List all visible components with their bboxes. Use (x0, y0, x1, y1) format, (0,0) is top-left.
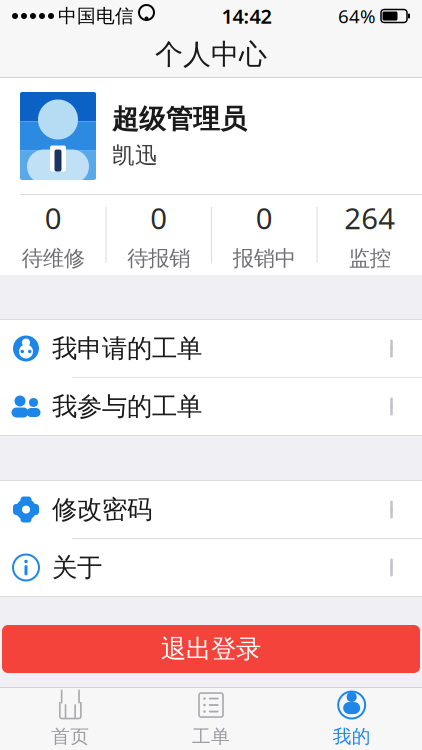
staticText: 我的 (333, 725, 371, 748)
staticText: 退出登录 (161, 633, 261, 664)
staticText: 监控 (349, 245, 391, 272)
button[interactable]: 工单 (141, 688, 281, 750)
staticText: 超级管理员 (112, 103, 247, 135)
button[interactable]: 修改密码 (0, 481, 422, 538)
staticText: 修改密码 (52, 494, 152, 525)
staticText: 我参与的工单 (52, 391, 202, 422)
button[interactable]: 超级管理员 (0, 78, 422, 194)
button[interactable]: 我参与的工单 (0, 378, 422, 435)
staticText: 待报销 (127, 245, 190, 272)
staticText: 0 (150, 198, 167, 237)
button[interactable]: 退出登录 (2, 625, 420, 673)
staticText: 关于 (52, 552, 102, 583)
button[interactable]: 我的 (281, 688, 422, 750)
button[interactable]: 我申请的工单 (0, 320, 422, 377)
staticText: 凯迅 (112, 141, 158, 169)
button[interactable]: 0 (0, 195, 105, 275)
staticText: 个人中心 (155, 37, 267, 72)
staticText: 0 (256, 198, 273, 237)
staticText: 264 (344, 198, 395, 237)
button[interactable]: 首页 (0, 688, 141, 750)
staticText: 0 (45, 198, 62, 237)
button[interactable]: 关于 (0, 539, 422, 596)
staticText: 工单 (192, 725, 230, 748)
staticText: 14:42 (221, 3, 271, 29)
staticText: 64% (338, 4, 376, 28)
staticText: 中国电信 (58, 4, 134, 27)
button[interactable]: 264 (316, 195, 422, 275)
button[interactable]: 0 (105, 195, 211, 275)
staticText: 我申请的工单 (52, 333, 202, 364)
staticText: 首页 (51, 725, 89, 748)
staticText: 待维修 (22, 245, 85, 272)
staticText: 报销中 (233, 245, 296, 272)
button[interactable]: 0 (211, 195, 316, 275)
